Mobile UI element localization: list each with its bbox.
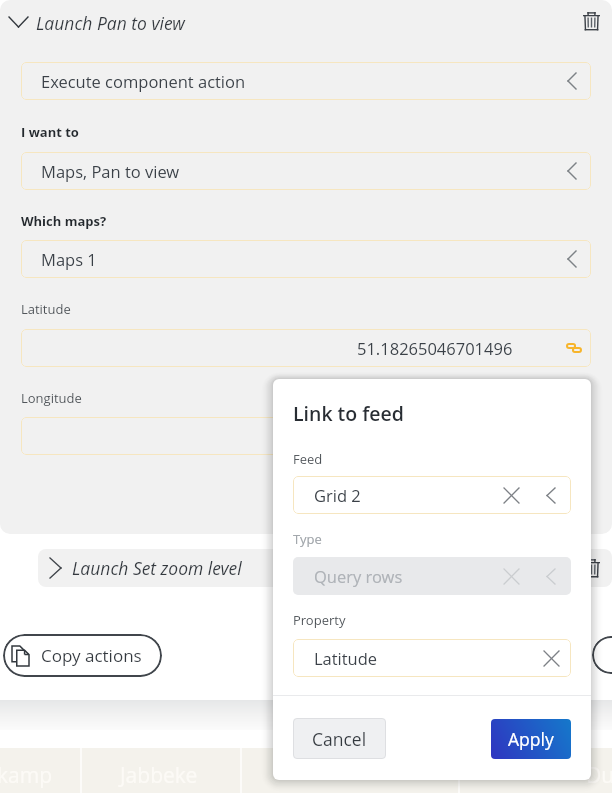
staticText: Apply xyxy=(508,727,554,751)
staticText: Copy actions xyxy=(41,644,142,667)
staticText: Which maps? xyxy=(21,212,107,230)
button[interactable]: Maps 1 xyxy=(21,240,591,278)
button[interactable]: 51.18265046701496 xyxy=(21,329,591,367)
staticText: I want to xyxy=(21,123,79,141)
staticText: Feed xyxy=(293,450,323,468)
button[interactable]: Grid 2 xyxy=(293,476,571,514)
staticText: Execute component action xyxy=(41,70,246,92)
button[interactable]: Maps, Pan to view xyxy=(21,152,591,190)
button[interactable] xyxy=(21,417,591,455)
button[interactable]: Latitude xyxy=(293,639,571,677)
staticText: Maps 1 xyxy=(41,248,97,270)
staticText: Du xyxy=(586,761,612,790)
button[interactable]: Apply xyxy=(491,719,571,759)
button[interactable]: More options xyxy=(592,636,612,674)
staticText: Property xyxy=(293,611,346,629)
staticText: kamp xyxy=(0,761,53,790)
button[interactable]: Copy actions xyxy=(3,634,162,677)
staticText: Latitude xyxy=(314,647,378,669)
staticText: Jabbeke xyxy=(120,761,198,790)
staticText: Longitude xyxy=(21,389,82,407)
staticText: Link to feed xyxy=(293,400,404,427)
staticText: 51.18265046701496 xyxy=(357,337,513,359)
staticText: Type xyxy=(293,530,322,548)
button[interactable]: Collapse action xyxy=(3,7,33,37)
staticText: Query rows xyxy=(314,565,403,587)
button[interactable]: Delete action xyxy=(577,7,605,35)
staticText: Latitude xyxy=(21,300,71,318)
staticText: Cancel xyxy=(312,727,367,751)
button[interactable]: Query rows xyxy=(293,557,571,595)
button[interactable]: Cancel xyxy=(293,718,386,759)
staticText: Launch Set zoom level xyxy=(72,556,242,580)
button[interactable]: Launch Set zoom level xyxy=(38,549,612,587)
staticText: Maps, Pan to view xyxy=(41,160,180,182)
staticText: Launch Pan to view xyxy=(36,11,185,35)
button[interactable]: Execute component action xyxy=(21,62,591,100)
staticText: Grid 2 xyxy=(314,484,361,506)
